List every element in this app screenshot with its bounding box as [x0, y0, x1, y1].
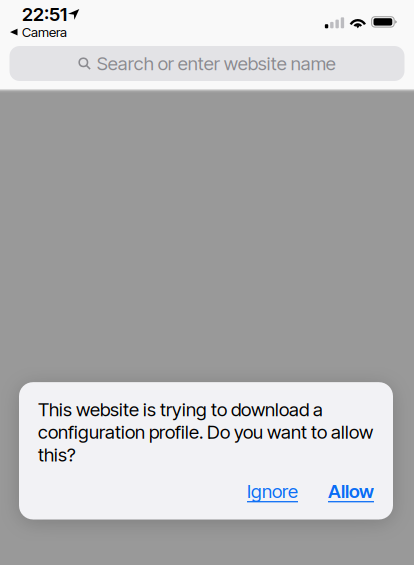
button[interactable]: Ignore [247, 480, 298, 502]
staticText: Camera [22, 24, 67, 40]
staticText: Search or enter website name [97, 52, 336, 75]
staticText: Ignore [247, 480, 298, 502]
staticText: Allow [328, 480, 374, 502]
button[interactable]: Allow [328, 480, 374, 502]
staticText: 22:51 [22, 3, 67, 26]
button[interactable]: Search or enter website name [0, 46, 414, 81]
staticText: This website is trying to download a con… [38, 398, 373, 466]
button[interactable]: Back to Camera [8, 23, 80, 41]
